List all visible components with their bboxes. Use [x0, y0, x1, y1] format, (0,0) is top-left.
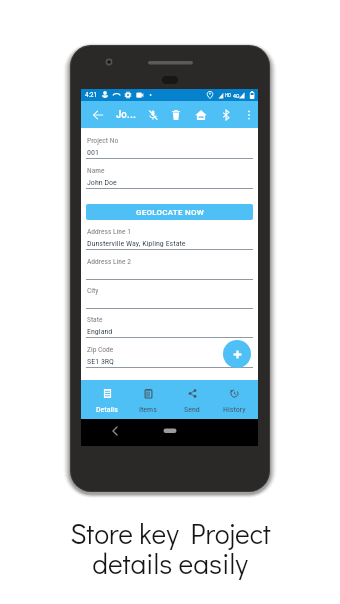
- button[interactable]: GEOLOCATE NOW: [86, 204, 253, 220]
- staticText: 001: [87, 148, 99, 157]
- staticText: GEOLOCATE NOW: [136, 208, 204, 217]
- staticText: details easily: [92, 545, 248, 582]
- button[interactable]: More options: [240, 106, 258, 124]
- staticText: Zip Code: [87, 345, 114, 354]
- button[interactable]: Bluetooth: [217, 106, 235, 124]
- button[interactable]: Items: [128, 380, 168, 419]
- button[interactable]: History: [214, 380, 254, 419]
- staticText: SE1 3RQ: [87, 357, 114, 366]
- staticText: Items: [139, 405, 157, 414]
- button[interactable]: Back: [89, 106, 107, 124]
- staticText: History: [223, 405, 246, 414]
- staticText: HD: [225, 92, 231, 98]
- staticText: 4G: [233, 92, 240, 99]
- staticText: Details: [96, 405, 118, 414]
- staticText: John Doe: [87, 178, 117, 187]
- button[interactable]: Mute microphone: [144, 106, 162, 124]
- staticText: England: [87, 327, 113, 336]
- staticText: City: [87, 286, 99, 295]
- button[interactable]: Site: [192, 106, 210, 124]
- staticText: Project No: [87, 136, 119, 145]
- button[interactable]: Add: [223, 340, 251, 368]
- staticText: State: [87, 315, 103, 324]
- staticText: 4:21: [85, 91, 98, 99]
- staticText: Store key Project: [70, 515, 271, 552]
- staticText: Send: [184, 405, 200, 414]
- staticText: Name: [87, 166, 105, 175]
- button[interactable]: Details: [87, 380, 127, 419]
- button[interactable]: Send: [172, 380, 212, 419]
- staticText: Address Line 2: [87, 257, 131, 266]
- button[interactable]: Delete: [167, 106, 185, 124]
- staticText: Address Line 1: [87, 227, 131, 236]
- staticText: Dunsterville Way, Kipling Estate: [87, 239, 186, 248]
- staticText: Jo...: [116, 108, 137, 121]
